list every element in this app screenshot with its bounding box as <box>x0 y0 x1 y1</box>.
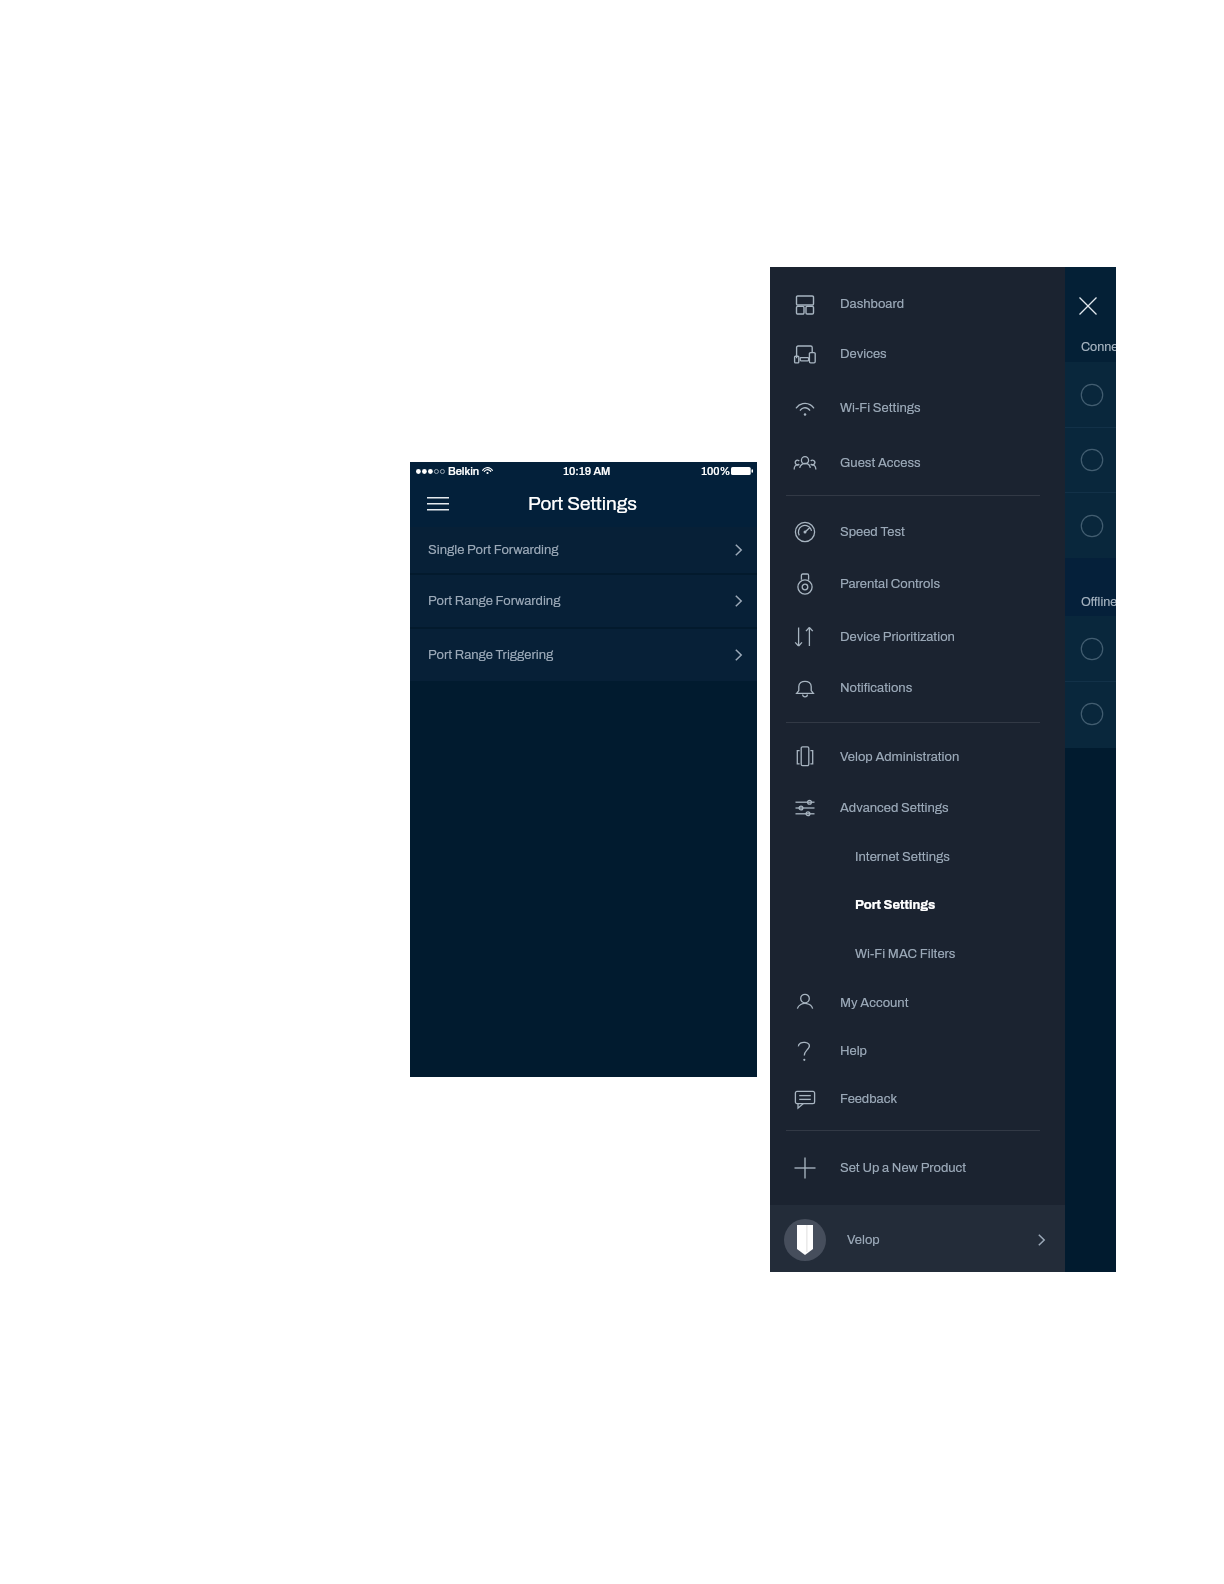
staticText: Port Range Triggering <box>428 648 554 662</box>
staticText: Feedback <box>840 1092 898 1106</box>
staticText: Set Up a New Product <box>840 1161 967 1175</box>
staticText: Velop <box>847 1233 880 1247</box>
staticText: Wi-Fi MAC Filters <box>855 947 956 961</box>
button[interactable]: My Account <box>770 978 1065 1028</box>
button[interactable]: Wi-Fi MAC Filters <box>770 930 1065 978</box>
button[interactable]: Notifications <box>770 663 1065 713</box>
button[interactable]: Devices <box>770 329 1065 379</box>
staticText: Velop Administration <box>840 750 960 764</box>
button[interactable]: Velop <box>770 1205 1065 1272</box>
staticText: Parental Controls <box>840 577 941 591</box>
button[interactable]: Close <box>1079 297 1097 315</box>
button[interactable]: Speed Test <box>770 507 1065 557</box>
staticText: Port Range Forwarding <box>428 594 561 608</box>
button[interactable]: Set Up a New Product <box>770 1143 1065 1193</box>
staticText: Guest Access <box>840 456 921 470</box>
button[interactable]: Parental Controls <box>770 559 1065 609</box>
staticText: Offline <box>1081 595 1116 609</box>
button[interactable]: Velop Administration <box>770 732 1065 782</box>
staticText: 10:19 AM <box>563 465 611 477</box>
button[interactable]: Menu <box>427 497 449 511</box>
button[interactable]: Help <box>770 1026 1065 1076</box>
staticText: Notifications <box>840 681 913 695</box>
staticText: 100% <box>701 465 731 477</box>
staticText: Help <box>840 1044 867 1058</box>
staticText: Speed Test <box>840 525 905 539</box>
button[interactable]: Port Range Triggering <box>410 629 757 681</box>
button[interactable]: Internet Settings <box>770 833 1065 881</box>
button[interactable]: Port Range Forwarding <box>410 575 757 627</box>
staticText: Internet Settings <box>855 850 950 864</box>
staticText: Single Port Forwarding <box>428 543 559 557</box>
staticText: Connected <box>1081 340 1116 354</box>
button[interactable]: Feedback <box>770 1074 1065 1124</box>
button[interactable]: Wi-Fi Settings <box>770 383 1065 433</box>
button[interactable]: Single Port Forwarding <box>410 527 757 573</box>
button[interactable]: Guest Access <box>770 438 1065 488</box>
staticText: Wi-Fi Settings <box>840 401 921 415</box>
staticText: Port Settings <box>855 898 936 912</box>
button[interactable]: Device Prioritization <box>770 612 1065 662</box>
staticText: Port Settings <box>528 493 637 514</box>
staticText: Device Prioritization <box>840 630 955 644</box>
button[interactable]: Dashboard <box>770 279 1065 329</box>
staticText: Devices <box>840 347 887 361</box>
staticText: My Account <box>840 996 909 1010</box>
button[interactable]: Advanced Settings <box>770 783 1065 833</box>
staticText: Belkin <box>448 465 480 477</box>
staticText: Advanced Settings <box>840 801 949 815</box>
button[interactable]: Port Settings <box>770 881 1065 929</box>
staticText: Dashboard <box>840 297 904 311</box>
